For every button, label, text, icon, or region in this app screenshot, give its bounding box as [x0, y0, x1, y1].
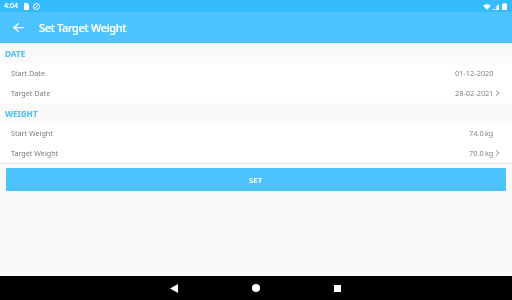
staticText: WEIGHT — [5, 108, 38, 119]
staticText: Start Weight — [11, 128, 53, 138]
staticText: Target Date — [11, 88, 51, 98]
button[interactable]: Start Date — [0, 63, 512, 83]
button[interactable]: Home — [238, 276, 274, 300]
staticText: 4:04 — [4, 1, 18, 11]
button[interactable]: Start Weight — [0, 123, 512, 143]
button[interactable]: Recent apps — [319, 276, 355, 300]
staticText: 74.0 kg — [469, 128, 494, 138]
staticText: 28-02-2021 — [455, 88, 494, 98]
staticText: Target Weight — [11, 148, 59, 158]
staticText: 01-12-2020 — [455, 68, 494, 78]
button[interactable]: Target Weight — [0, 143, 512, 163]
staticText: 70.0 kg — [469, 148, 494, 158]
button[interactable]: Back — [0, 12, 31, 43]
button[interactable]: Target Date — [0, 83, 512, 103]
button[interactable]: Back — [156, 276, 192, 300]
button[interactable]: SET — [6, 168, 506, 191]
staticText: DATE — [5, 48, 26, 59]
staticText: SET — [249, 175, 263, 185]
staticText: Set Target Weight — [39, 20, 127, 35]
staticText: Start Date — [11, 68, 45, 78]
